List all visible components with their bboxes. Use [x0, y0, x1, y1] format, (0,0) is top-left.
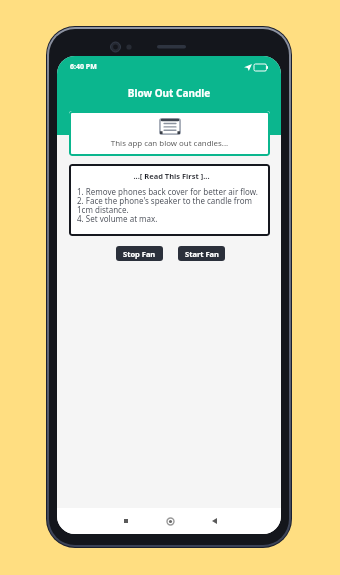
staticText: Stop Fan [123, 249, 156, 259]
staticText: This app can blow out candles... [69, 138, 270, 149]
staticText: 6:40 PM [70, 62, 97, 72]
staticText: ...[ Read This First ]... [71, 171, 270, 181]
button[interactable]: This app can blow out candles... [69, 111, 270, 156]
button[interactable]: Stop Fan [116, 246, 163, 261]
button[interactable]: Back [203, 510, 225, 532]
button[interactable]: Recent apps [115, 510, 137, 532]
staticText: Blow Out Candle [57, 86, 281, 100]
button[interactable]: Home [159, 510, 181, 532]
staticText: Start Fan [185, 249, 219, 259]
button[interactable]: Start Fan [178, 246, 225, 261]
staticText: 1. Remove phones back cover for better a… [77, 186, 258, 225]
